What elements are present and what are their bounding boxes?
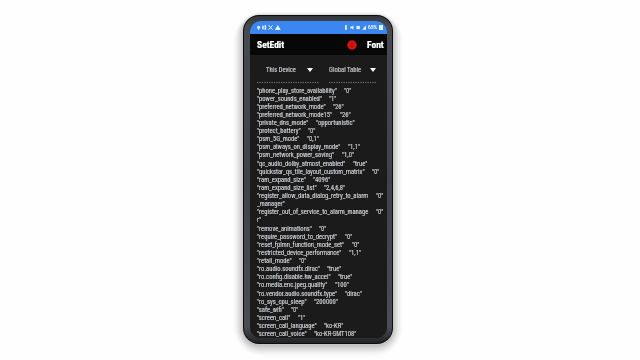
staticText: "power_sounds_enabled" bbox=[257, 95, 322, 103]
staticText: "opportunistic" bbox=[316, 119, 355, 127]
staticText: "safe_wifi" bbox=[257, 306, 284, 314]
staticText: "retail_mode" bbox=[257, 257, 292, 265]
button[interactable]: "retail_mode" bbox=[257, 257, 384, 265]
button[interactable]: "preferred_network_mode15" bbox=[257, 111, 384, 119]
button[interactable]: "psm_5G_mode" bbox=[257, 135, 384, 143]
button[interactable]: Font bbox=[367, 39, 384, 50]
staticText: "psm_5G_mode" bbox=[257, 135, 300, 143]
staticText: "1" bbox=[329, 95, 337, 103]
staticText: "ko-KR" bbox=[324, 322, 344, 330]
staticText: _manager" bbox=[257, 200, 285, 208]
button[interactable]: "power_sounds_enabled" bbox=[257, 95, 384, 103]
staticText: "reset_fplmn_function_mode_set" bbox=[257, 241, 345, 249]
staticText: "0" bbox=[319, 225, 327, 233]
staticText: "register_allow_data_dialog_retry_to_ala… bbox=[257, 192, 369, 200]
button[interactable]: "register_allow_data_dialog_retry_to_ala… bbox=[257, 192, 384, 200]
staticText: "0" bbox=[345, 233, 353, 241]
staticText: r" bbox=[257, 216, 262, 224]
button[interactable]: SetEdit bbox=[257, 39, 285, 50]
staticText: "100" bbox=[335, 281, 349, 289]
staticText: "dirac" bbox=[345, 290, 362, 298]
staticText: "true" bbox=[338, 273, 353, 281]
staticText: "restricted_device_performance" bbox=[257, 249, 342, 257]
staticText: "screen_call" bbox=[257, 314, 291, 322]
button[interactable]: "safe_wifi" bbox=[257, 306, 384, 314]
staticText: "ro.vendor.audio.soundfx.type" bbox=[257, 290, 338, 298]
staticText: SetEdit bbox=[257, 39, 285, 50]
staticText: 65% bbox=[368, 24, 378, 31]
staticText: "1,1" bbox=[349, 249, 362, 257]
button[interactable]: Global Table bbox=[329, 55, 376, 88]
staticText: "remove_animations" bbox=[257, 225, 312, 233]
button[interactable]: "ro.media.enc.jpeg.quality" bbox=[257, 281, 384, 289]
staticText: "ram_expand_size" bbox=[257, 176, 306, 184]
staticText: Global Table bbox=[329, 66, 362, 74]
staticText: "26" bbox=[340, 111, 351, 119]
staticText: "0" bbox=[291, 306, 299, 314]
button[interactable]: _manager" bbox=[257, 200, 384, 208]
button[interactable]: "ro.config.disable.hw_accel" bbox=[257, 273, 384, 281]
staticText: "0" bbox=[308, 127, 316, 135]
button[interactable]: "screen_call_voice" bbox=[257, 330, 384, 338]
button[interactable]: Stop recording bbox=[347, 40, 357, 50]
staticText: "true" bbox=[327, 265, 342, 273]
staticText: "ram_expand_size_list" bbox=[257, 184, 317, 192]
staticText: "require_password_to_decrypt" bbox=[257, 233, 338, 241]
staticText: "1,1" bbox=[348, 143, 361, 151]
button[interactable]: "remove_animations" bbox=[257, 225, 384, 233]
staticText: "register_out_of_service_to_alarm_manage bbox=[257, 208, 369, 216]
button[interactable]: "protect_battery" bbox=[257, 127, 384, 135]
staticText: This Device bbox=[266, 66, 296, 74]
button[interactable]: "ro.vendor.audio.soundfx.type" bbox=[257, 290, 384, 298]
staticText: "quickstar_qs_tile_layout_custom_matrix" bbox=[257, 168, 365, 176]
button[interactable]: r" bbox=[257, 216, 384, 224]
staticText: "4096" bbox=[313, 176, 331, 184]
staticText: "psm_always_on_display_mode" bbox=[257, 143, 341, 151]
button[interactable]: This Device bbox=[257, 55, 319, 88]
staticText: "2,4,6,8" bbox=[324, 184, 346, 192]
button[interactable]: "screen_call_language" bbox=[257, 322, 384, 330]
staticText: "true" bbox=[353, 160, 368, 168]
button[interactable]: "screen_call" bbox=[257, 314, 384, 322]
staticText: "screen_call_language" bbox=[257, 322, 317, 330]
button[interactable]: "require_password_to_decrypt" bbox=[257, 233, 384, 241]
button[interactable]: "ro_sys_cpu_sleep" bbox=[257, 298, 384, 306]
staticText: "26" bbox=[333, 103, 344, 111]
staticText: "private_dns_mode" bbox=[257, 119, 309, 127]
button[interactable]: "private_dns_mode" bbox=[257, 119, 384, 127]
staticText: "protect_battery" bbox=[257, 127, 301, 135]
staticText: "psm_network_power_saving" bbox=[257, 151, 335, 159]
staticText: "1,0" bbox=[342, 151, 355, 159]
button[interactable]: "preferred_network_mode" bbox=[257, 103, 384, 111]
staticText: "ro.media.enc.jpeg.quality" bbox=[257, 281, 328, 289]
staticText: "0" bbox=[299, 257, 307, 265]
button[interactable]: "psm_always_on_display_mode" bbox=[257, 143, 384, 151]
button[interactable]: "ram_expand_size" bbox=[257, 176, 384, 184]
staticText: "0" bbox=[376, 192, 384, 200]
staticText: "ro.audio.soundfx.dirac" bbox=[257, 265, 320, 273]
staticText: "ko-KR-SMT108" bbox=[314, 330, 357, 338]
staticText: "phone_play_store_availability" bbox=[257, 87, 337, 95]
staticText: "0" bbox=[376, 208, 384, 216]
staticText: "screen_call_voice" bbox=[257, 330, 307, 338]
button[interactable]: "psm_network_power_saving" bbox=[257, 151, 384, 159]
staticText: "0" bbox=[352, 241, 360, 249]
staticText: "preferred_network_mode15" bbox=[257, 111, 333, 119]
button[interactable]: "phone_play_store_availability" bbox=[257, 87, 384, 95]
button[interactable]: "register_out_of_service_to_alarm_manage bbox=[257, 208, 384, 216]
staticText: "qc_audio_dolby_atmost_enabled" bbox=[257, 160, 346, 168]
staticText: "preferred_network_mode" bbox=[257, 103, 326, 111]
staticText: "200000" bbox=[314, 298, 338, 306]
button[interactable]: "ro.audio.soundfx.dirac" bbox=[257, 265, 384, 273]
staticText: "0" bbox=[372, 168, 380, 176]
button[interactable]: "restricted_device_performance" bbox=[257, 249, 384, 257]
staticText: Font bbox=[367, 39, 384, 50]
button[interactable]: "qc_audio_dolby_atmost_enabled" bbox=[257, 160, 384, 168]
staticText: "0,1" bbox=[307, 135, 320, 143]
staticText: "0" bbox=[344, 87, 352, 95]
button[interactable]: "ram_expand_size_list" bbox=[257, 184, 384, 192]
staticText: "ro.config.disable.hw_accel" bbox=[257, 273, 331, 281]
button[interactable]: "reset_fplmn_function_mode_set" bbox=[257, 241, 384, 249]
staticText: "1" bbox=[298, 314, 306, 322]
button[interactable]: "quickstar_qs_tile_layout_custom_matrix" bbox=[257, 168, 384, 176]
